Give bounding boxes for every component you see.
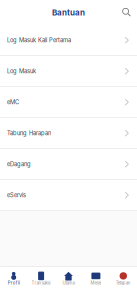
button[interactable]: Mesej [82,273,110,287]
button[interactable]: Log Masuk [0,56,137,87]
staticText: Log Masuk Kali Pertama [7,37,71,44]
staticText: Bantuan [52,8,85,17]
button[interactable]: eMC [0,87,137,118]
staticText: eDagang [7,161,31,168]
staticText: Transaksi [32,280,51,285]
button[interactable]: eServis [0,180,137,211]
staticText: Tabung Harapan [7,130,51,137]
staticText: Utama [62,280,74,285]
button[interactable]: eDagang [0,149,137,180]
staticText: eServis [7,192,26,199]
button[interactable]: Utama [55,273,82,287]
button[interactable]: Tetapan [110,273,137,287]
staticText: Log Masuk [7,68,36,75]
staticText: Tetapan [116,280,131,285]
button[interactable]: Tabung Harapan [0,118,137,149]
button[interactable]: Profil [0,273,27,287]
staticText: Mesej [90,280,101,285]
button[interactable]: Log Masuk Kali Pertama [0,25,137,56]
button[interactable]: Transaksi [27,273,55,287]
staticText: eMC [7,99,19,106]
staticText: Profil [8,280,20,285]
button[interactable]: Search [123,8,137,17]
